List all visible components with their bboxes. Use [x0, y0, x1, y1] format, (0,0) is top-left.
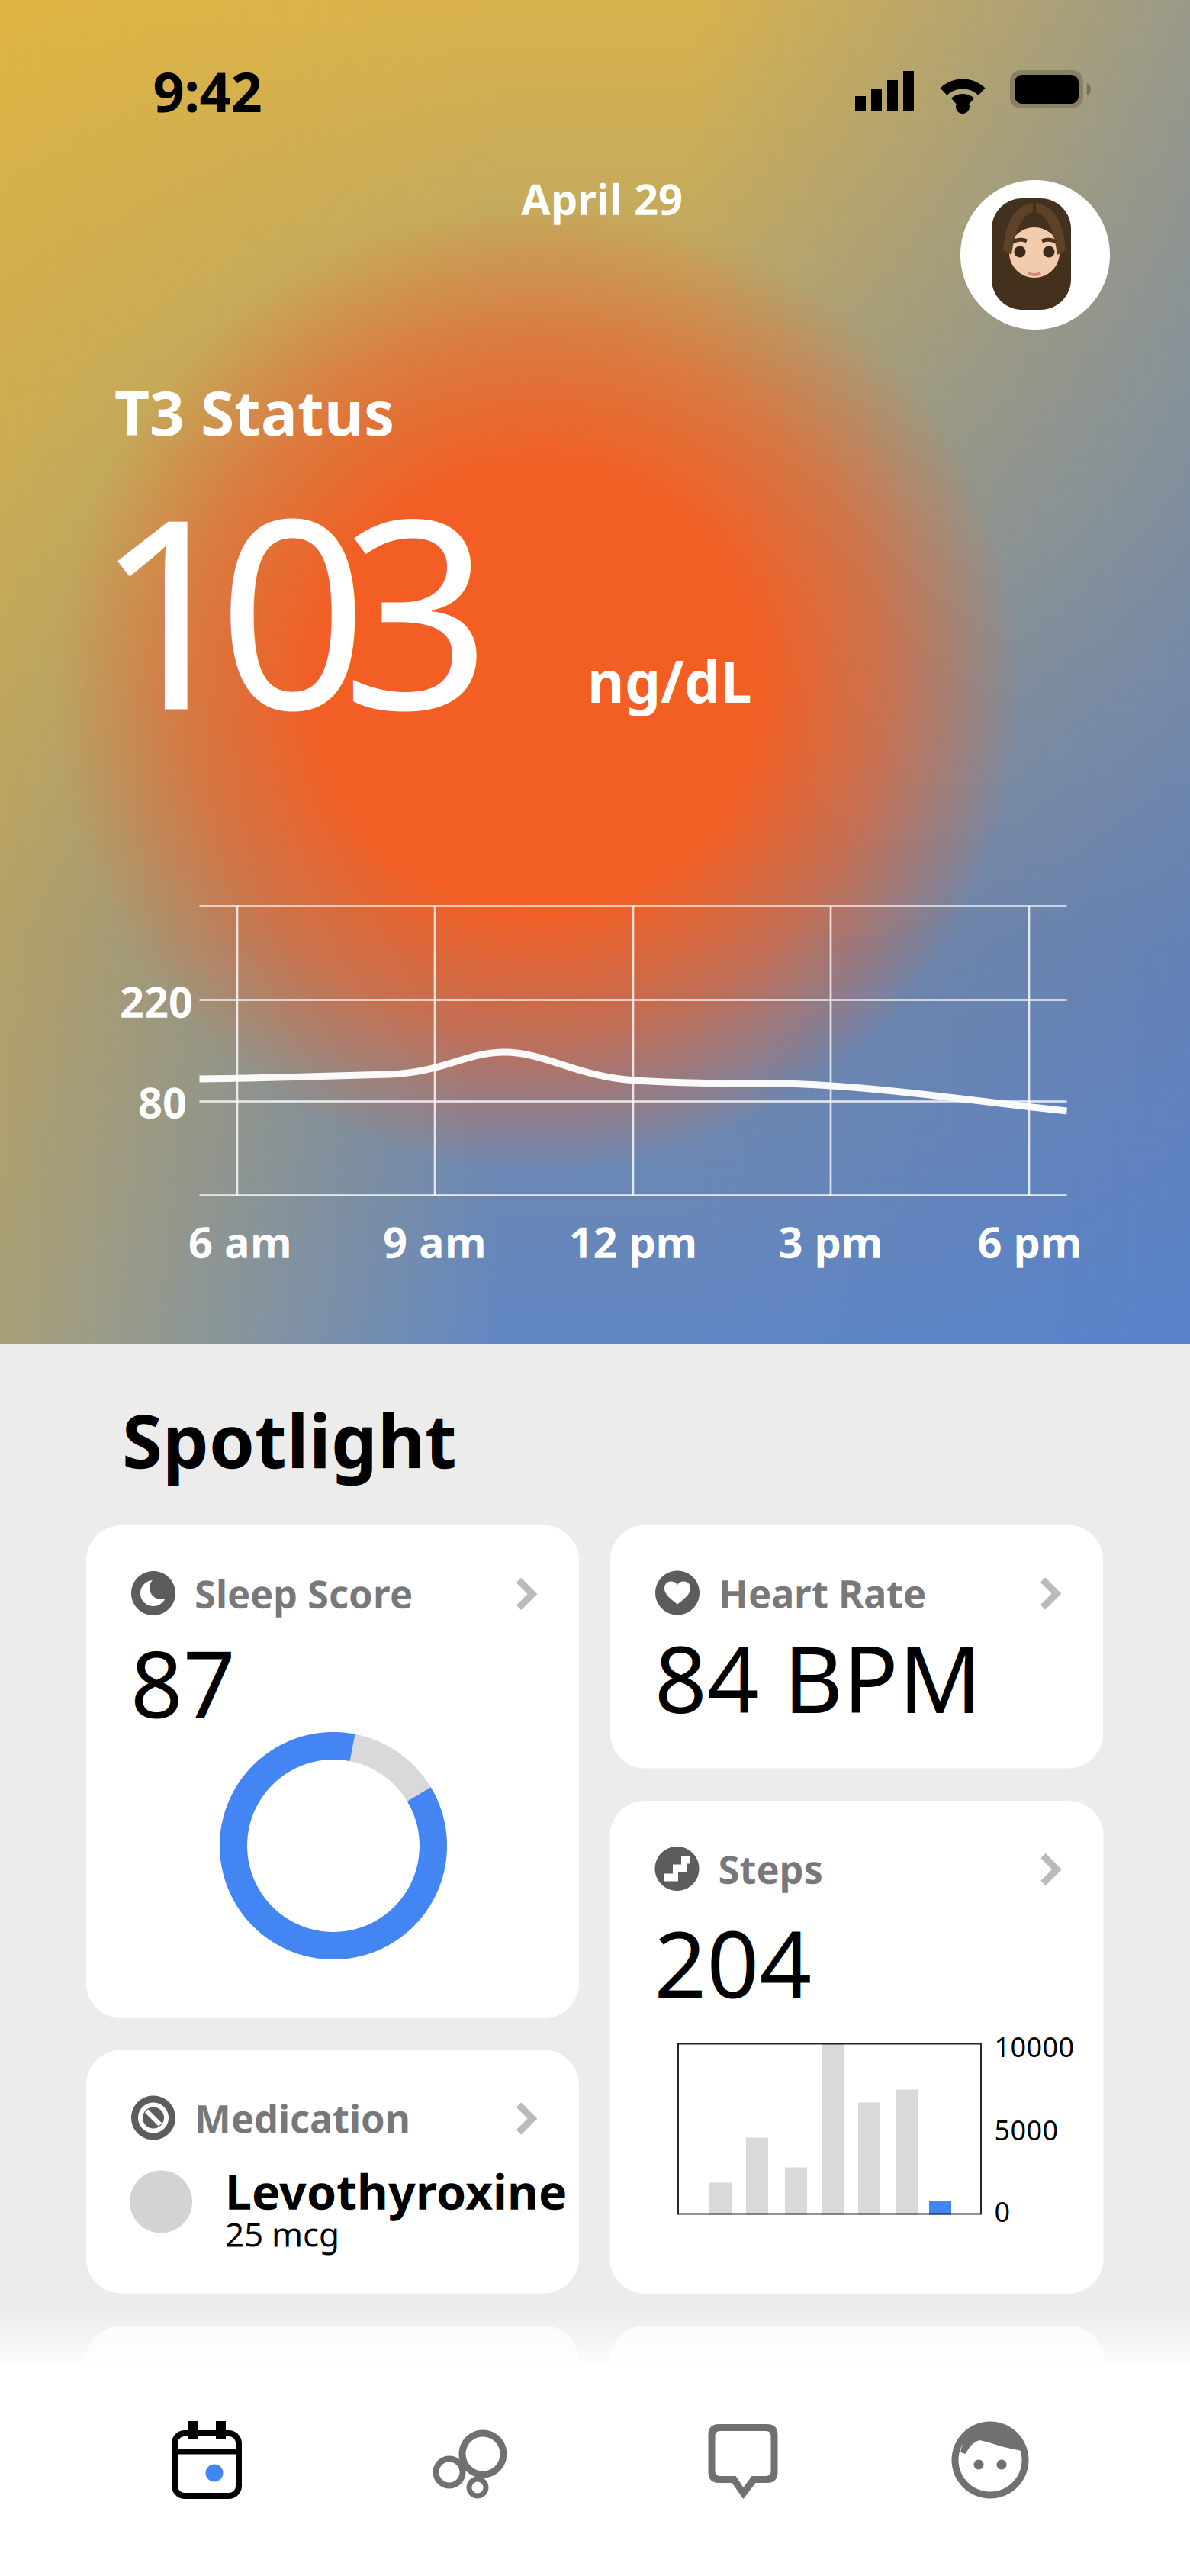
- staticText: April 29: [521, 170, 683, 227]
- button[interactable]: Profile: [955, 2425, 1025, 2495]
- staticText: 80: [138, 1073, 187, 1130]
- staticText: 0: [994, 2193, 1010, 2230]
- staticText: Heart Rate: [719, 1567, 926, 1619]
- staticText: Levothyroxine: [225, 2159, 567, 2223]
- staticText: 204: [654, 1902, 812, 2023]
- staticText: 10000: [994, 2028, 1074, 2065]
- staticText: 25 mcg: [225, 2211, 339, 2256]
- staticText: 6 pm: [978, 1213, 1082, 1270]
- staticText: Medication: [195, 2092, 410, 2144]
- staticText: 9:42: [153, 54, 262, 127]
- staticText: 6 am: [188, 1213, 292, 1270]
- staticText: 5000: [994, 2111, 1058, 2148]
- button[interactable]: Medication: [86, 2050, 579, 2293]
- button[interactable]: Profile: [960, 180, 1110, 330]
- button[interactable]: Data: [436, 2433, 503, 2496]
- button[interactable]: Messages: [708, 2424, 778, 2499]
- button[interactable]: Steps: [610, 1801, 1103, 2294]
- button[interactable]: Today: [174, 2421, 240, 2496]
- staticText: T3 Status: [114, 372, 394, 453]
- staticText: Sleep Score: [195, 1568, 413, 1619]
- staticText: Spotlight: [122, 1391, 457, 1489]
- staticText: 3 pm: [778, 1213, 883, 1270]
- button[interactable]: Sleep Score: [86, 1525, 579, 2018]
- staticText: Steps: [718, 1843, 823, 1894]
- staticText: 84 BPM: [654, 1617, 982, 1738]
- staticText: 12 pm: [569, 1213, 698, 1270]
- staticText: 9 am: [383, 1213, 487, 1270]
- staticText: ng/dL: [587, 643, 752, 718]
- button[interactable]: Heart Rate: [610, 1525, 1103, 1768]
- staticText: 103: [94, 433, 492, 782]
- staticText: 220: [120, 973, 193, 1029]
- staticText: 87: [130, 1622, 236, 1743]
